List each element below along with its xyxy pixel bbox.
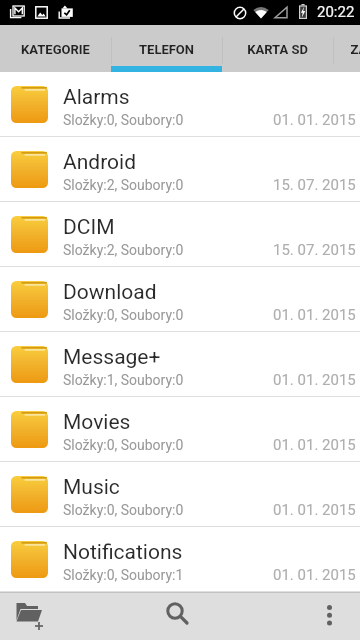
button[interactable]: Android — [0, 137, 360, 202]
staticText: Složky:0, Soubory:1 — [63, 567, 184, 583]
staticText: Složky:0, Soubory:0 — [63, 437, 184, 453]
button[interactable]: KATEGORIE — [0, 25, 111, 72]
button[interactable]: Alarms — [0, 72, 360, 137]
button[interactable]: More options — [304, 592, 360, 640]
staticText: Složky:0, Soubory:0 — [63, 112, 184, 128]
staticText: Notifications — [63, 540, 183, 565]
button[interactable]: Movies — [0, 397, 360, 462]
staticText: 01. 01. 2015 — [273, 566, 356, 584]
button[interactable]: DCIM — [0, 202, 360, 267]
staticText: Složky:1, Soubory:0 — [63, 372, 184, 388]
button[interactable]: TELEFON — [111, 25, 222, 72]
staticText: TELEFON — [139, 42, 194, 57]
button[interactable]: Notifications — [0, 527, 360, 592]
staticText: Složky:2, Soubory:0 — [63, 242, 184, 258]
staticText: Složky:0, Soubory:0 — [63, 502, 184, 518]
staticText: Android — [63, 150, 136, 175]
button[interactable]: Download — [0, 267, 360, 332]
button[interactable]: KARTA SD — [222, 25, 333, 72]
staticText: KATEGORIE — [21, 42, 90, 57]
staticText: Alarms — [63, 85, 130, 110]
staticText: 01. 01. 2015 — [273, 436, 356, 454]
staticText: Message+ — [63, 345, 161, 370]
staticText: KARTA SD — [247, 42, 308, 57]
staticText: 15. 07. 2015 — [273, 176, 356, 194]
staticText: 01. 01. 2015 — [273, 501, 356, 519]
button[interactable]: Music — [0, 462, 360, 527]
staticText: Složky:0, Soubory:0 — [63, 307, 184, 323]
button[interactable]: New folder — [0, 592, 112, 640]
staticText: 15. 07. 2015 — [273, 241, 356, 259]
staticText: 01. 01. 2015 — [273, 371, 356, 389]
staticText: 01. 01. 2015 — [273, 111, 356, 129]
button[interactable]: Message+ — [0, 332, 360, 397]
staticText: 20:22 — [317, 3, 355, 21]
staticText: Složky:2, Soubory:0 — [63, 177, 184, 193]
staticText: ZAŘÍZENÍ — [350, 42, 360, 57]
staticText: Movies — [63, 410, 131, 435]
staticText: Download — [63, 280, 157, 305]
button[interactable]: ZAŘÍZENÍ — [333, 25, 360, 72]
staticText: 01. 01. 2015 — [273, 306, 356, 324]
staticText: DCIM — [63, 215, 115, 240]
staticText: Music — [63, 475, 120, 500]
button[interactable]: Search — [112, 592, 248, 640]
